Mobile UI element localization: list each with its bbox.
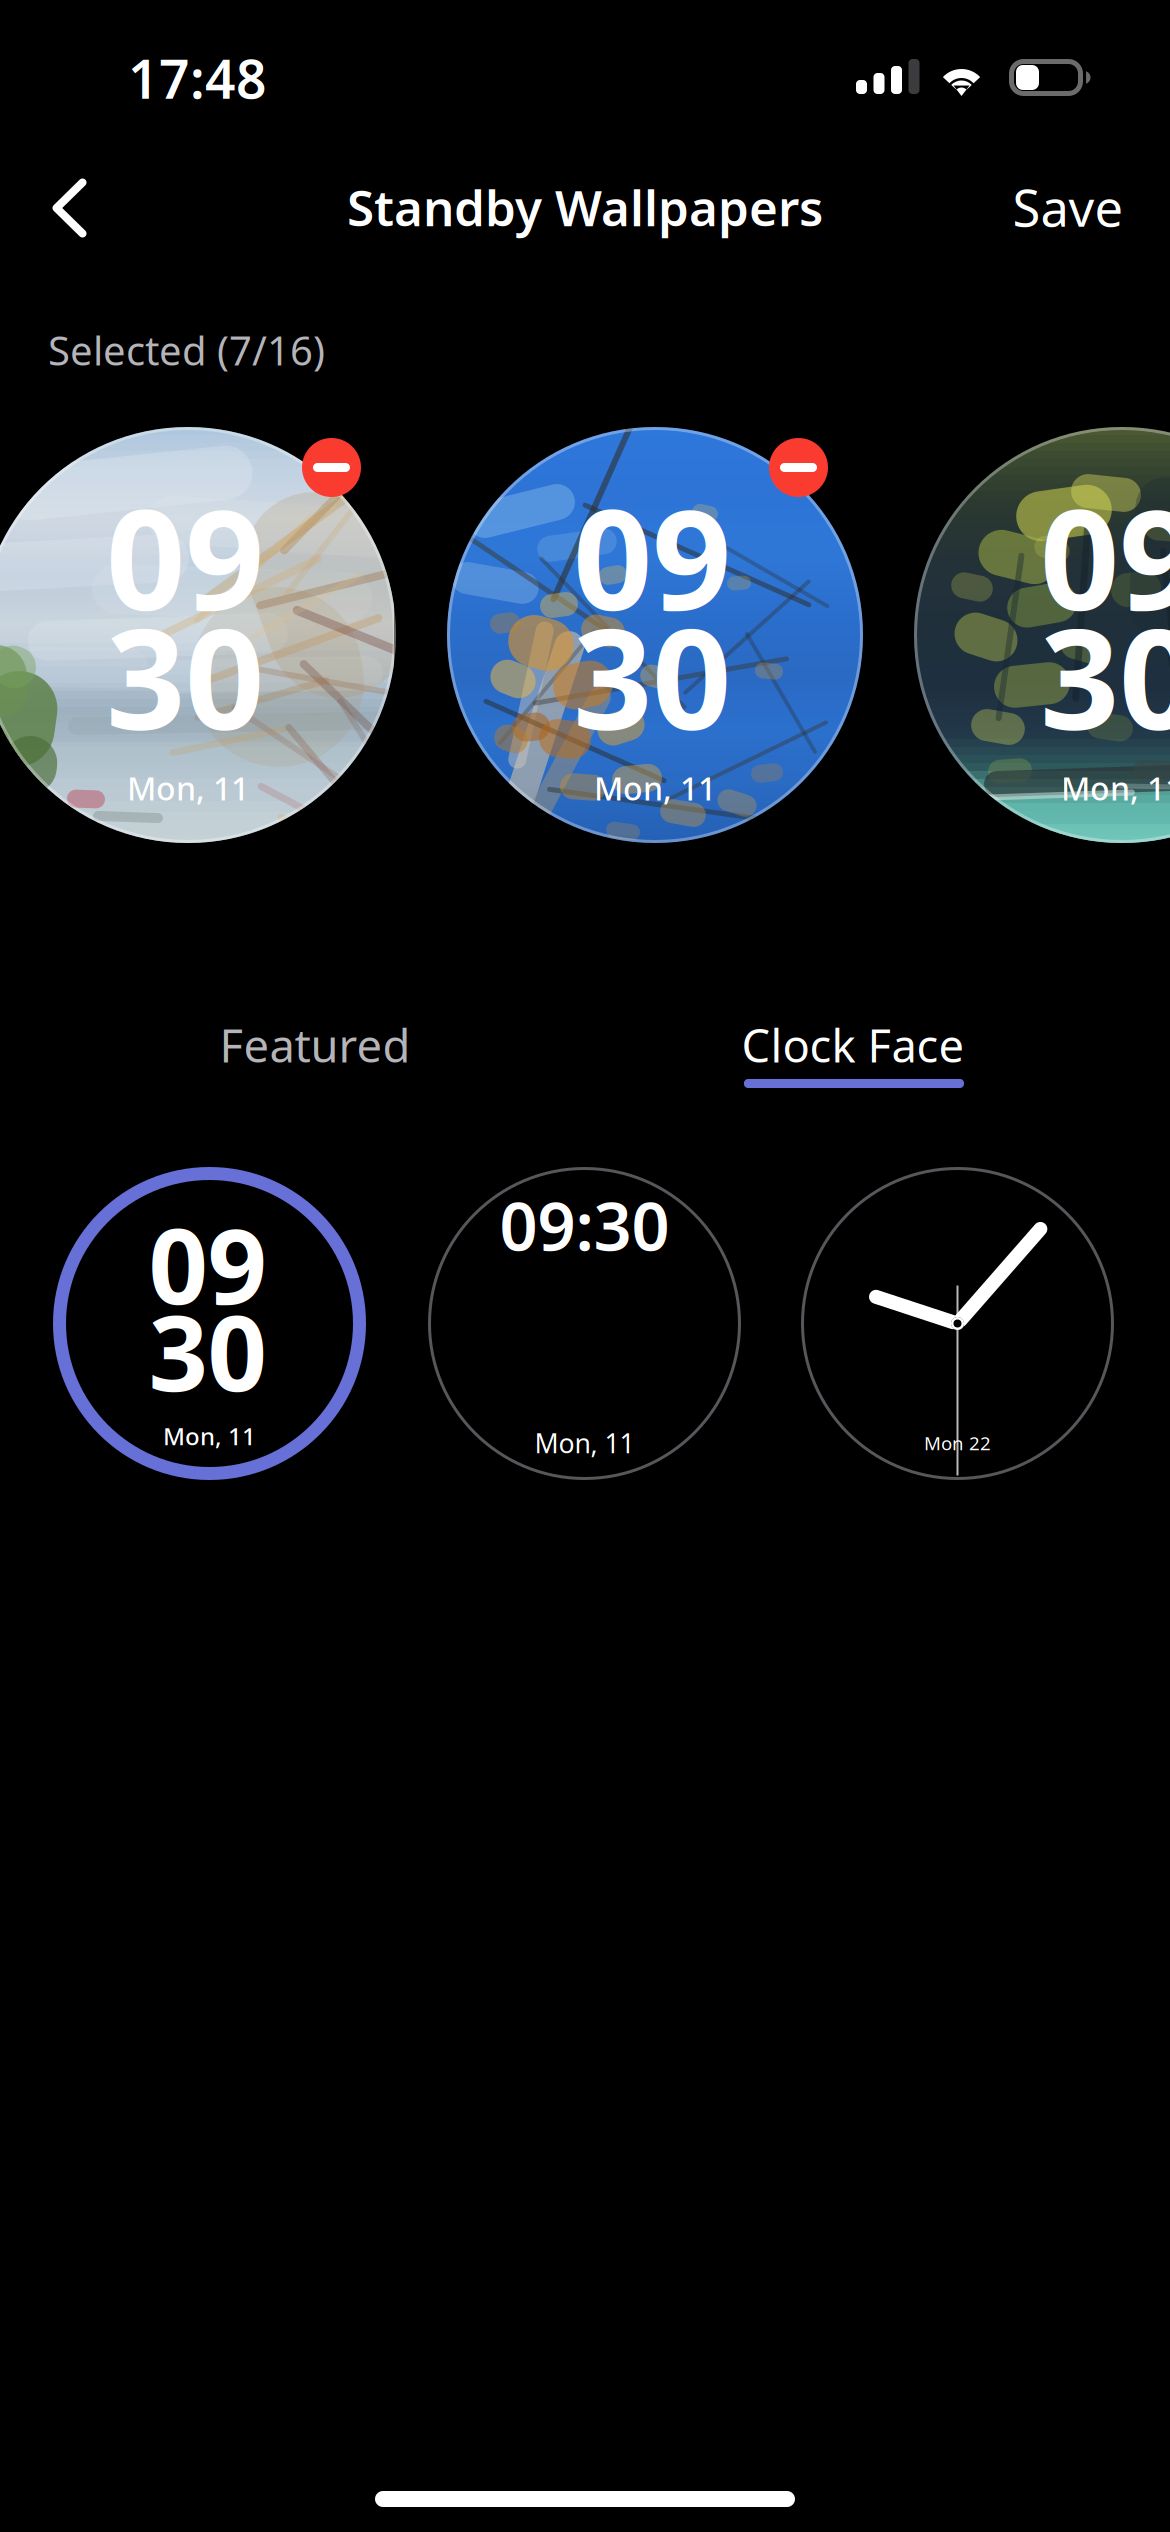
staticText: 30	[573, 584, 731, 768]
staticText: Clock Face	[741, 1015, 964, 1075]
button[interactable]: Back	[44, 148, 164, 266]
staticText: 30	[106, 584, 264, 768]
staticText: 09	[106, 464, 264, 648]
button[interactable]: Featured	[65, 981, 565, 1111]
staticText: Featured	[219, 1015, 410, 1075]
button[interactable]: Top digital clock face	[428, 1167, 741, 1480]
button[interactable]: Remove wallpaper	[769, 438, 828, 497]
staticText: Mon, 11	[594, 767, 716, 809]
staticText: Selected (7/16)	[48, 323, 325, 376]
staticText: Mon, 11	[163, 1420, 256, 1452]
staticText: Save	[1012, 173, 1123, 241]
staticText: 30	[1040, 584, 1170, 768]
button[interactable]: Stacked digital clock face, selected	[53, 1167, 366, 1480]
staticText: Mon, 11	[534, 1425, 634, 1461]
button[interactable]: Analog clock face	[801, 1167, 1114, 1480]
staticText: 30	[148, 1282, 266, 1420]
staticText: Mon, 11	[1061, 767, 1170, 809]
button[interactable]: Remove wallpaper	[302, 438, 361, 497]
button[interactable]: Clock Face	[603, 981, 1103, 1111]
staticText: 09	[1040, 464, 1170, 648]
staticText: 17:48	[128, 43, 267, 113]
staticText: Mon, 11	[127, 767, 249, 809]
staticText: Mon 22	[924, 1431, 991, 1455]
staticText: 09	[148, 1195, 266, 1333]
staticText: 09:30	[499, 1181, 669, 1269]
staticText: Standby Wallpapers	[347, 174, 823, 240]
staticText: 09	[573, 464, 731, 648]
button[interactable]: Save	[978, 148, 1158, 266]
